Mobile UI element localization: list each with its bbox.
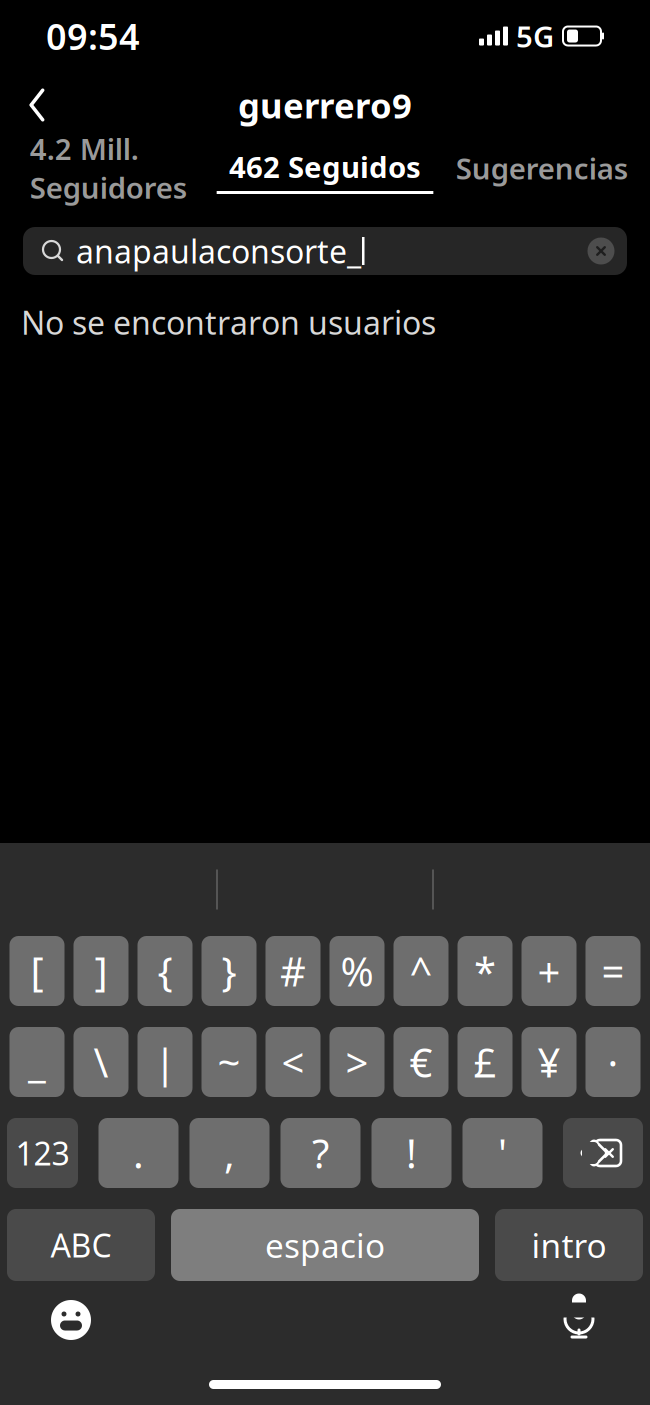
staticText: [: [30, 944, 43, 997]
staticText: Sugerencias: [456, 148, 628, 187]
staticText: intro: [531, 1223, 606, 1267]
button[interactable]: #: [265, 936, 320, 1006]
staticText: €: [409, 1035, 432, 1088]
button[interactable]: 4.2 Mill. Seguidores: [0, 142, 217, 194]
button[interactable]: |: [137, 1027, 192, 1097]
button[interactable]: .: [98, 1118, 178, 1188]
staticText: |: [154, 1035, 176, 1088]
button[interactable]: *: [457, 936, 512, 1006]
button[interactable]: >: [329, 1027, 384, 1097]
staticText: ,: [224, 1126, 235, 1179]
staticText: ?: [312, 1126, 329, 1179]
staticText: _: [28, 1035, 46, 1088]
button[interactable]: ,: [189, 1118, 269, 1188]
staticText: ': [498, 1126, 507, 1179]
staticText: ~: [217, 1035, 240, 1088]
button[interactable]: Dictado: [544, 1285, 614, 1355]
staticText: 5G: [516, 16, 554, 55]
staticText: ¥: [537, 1035, 560, 1088]
staticText: *: [474, 944, 496, 997]
staticText: ·: [607, 1035, 618, 1088]
staticText: \: [93, 1035, 108, 1088]
staticText: =: [601, 944, 624, 997]
button[interactable]: ·: [585, 1027, 640, 1097]
staticText: %: [340, 944, 373, 997]
button[interactable]: Borrar: [563, 1118, 643, 1188]
button[interactable]: %: [329, 936, 384, 1006]
staticText: {: [157, 944, 172, 997]
button[interactable]: =: [585, 936, 640, 1006]
button[interactable]: <: [265, 1027, 320, 1097]
staticText: 462 Seguidos: [229, 147, 421, 186]
staticText: 09:54: [46, 12, 140, 60]
staticText: ABC: [50, 1224, 111, 1266]
button[interactable]: \: [73, 1027, 128, 1097]
button[interactable]: Sugerencias: [433, 142, 650, 194]
staticText: 123: [15, 1132, 69, 1174]
button[interactable]: +: [521, 936, 576, 1006]
button[interactable]: intro: [495, 1209, 643, 1281]
button[interactable]: _: [9, 1027, 64, 1097]
staticText: }: [221, 944, 236, 997]
staticText: guerrero9: [238, 82, 412, 128]
staticText: espacio: [265, 1223, 385, 1267]
staticText: 4.2 Mill. Seguidores: [30, 129, 187, 207]
staticText: <: [281, 1035, 304, 1088]
button[interactable]: Borrar texto: [577, 227, 625, 275]
button[interactable]: !: [371, 1118, 451, 1188]
button[interactable]: ABC: [7, 1209, 155, 1281]
staticText: >: [345, 1035, 368, 1088]
button[interactable]: Atrás: [10, 78, 64, 132]
button[interactable]: ^: [393, 936, 448, 1006]
staticText: #: [280, 944, 306, 997]
button[interactable]: ': [462, 1118, 542, 1188]
button[interactable]: 462 Seguidos: [217, 142, 433, 194]
button[interactable]: Emoji: [36, 1285, 106, 1355]
button[interactable]: ]: [73, 936, 128, 1006]
button[interactable]: £: [457, 1027, 512, 1097]
button[interactable]: ¥: [521, 1027, 576, 1097]
button[interactable]: espacio: [171, 1209, 479, 1281]
button[interactable]: }: [201, 936, 256, 1006]
staticText: No se encontraron usuarios: [21, 301, 436, 343]
button[interactable]: ~: [201, 1027, 256, 1097]
staticText: ^: [409, 944, 432, 997]
button[interactable]: [: [9, 936, 64, 1006]
staticText: £: [473, 1035, 496, 1088]
button[interactable]: {: [137, 936, 192, 1006]
staticText: !: [406, 1126, 417, 1179]
button[interactable]: 123: [7, 1118, 78, 1188]
staticText: +: [537, 944, 560, 997]
staticText: .: [133, 1126, 144, 1179]
button[interactable]: €: [393, 1027, 448, 1097]
button[interactable]: ?: [280, 1118, 360, 1188]
staticText: ]: [94, 944, 107, 997]
staticText: anapaulaconsorte_: [76, 230, 361, 272]
